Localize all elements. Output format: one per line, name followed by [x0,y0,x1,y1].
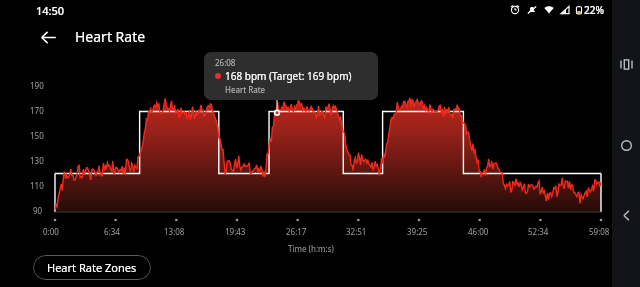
staticText: Heart Rate [225,84,266,95]
staticText: 46:00 [468,226,489,237]
staticText: 26:17 [286,226,307,237]
staticText: 170 [30,105,44,116]
staticText: 6:34 [104,226,120,237]
staticText: 14:50 [36,3,65,18]
staticText: Heart Rate Zones [47,260,137,275]
staticText: Time (h:m:s) [288,243,334,254]
staticText: 150 [30,130,44,141]
staticText: Heart Rate [75,27,146,46]
staticText: 13:08 [164,226,185,237]
staticText: 26:08 [215,57,236,68]
staticText: 190 [30,80,44,91]
staticText: 52:34 [528,226,549,237]
staticText: 19:43 [225,226,246,237]
staticText: 168 bpm (Target: 169 bpm) [225,69,352,83]
staticText: 32:51 [346,226,367,237]
button[interactable]: Back [614,203,638,227]
button[interactable]: Back [33,22,63,52]
staticText: 90 [33,205,43,216]
staticText: 22% [584,3,604,17]
staticText: 110 [30,180,44,191]
staticText: 59:08 [589,226,610,237]
staticText: 0:00 [43,226,59,237]
button[interactable]: Recent apps [614,52,638,76]
staticText: 130 [30,155,44,166]
button[interactable]: Heart Rate Zones [33,255,151,280]
staticText: 39:25 [407,226,428,237]
button[interactable]: Home [614,133,638,157]
button[interactable]: 26:08 [204,52,378,100]
